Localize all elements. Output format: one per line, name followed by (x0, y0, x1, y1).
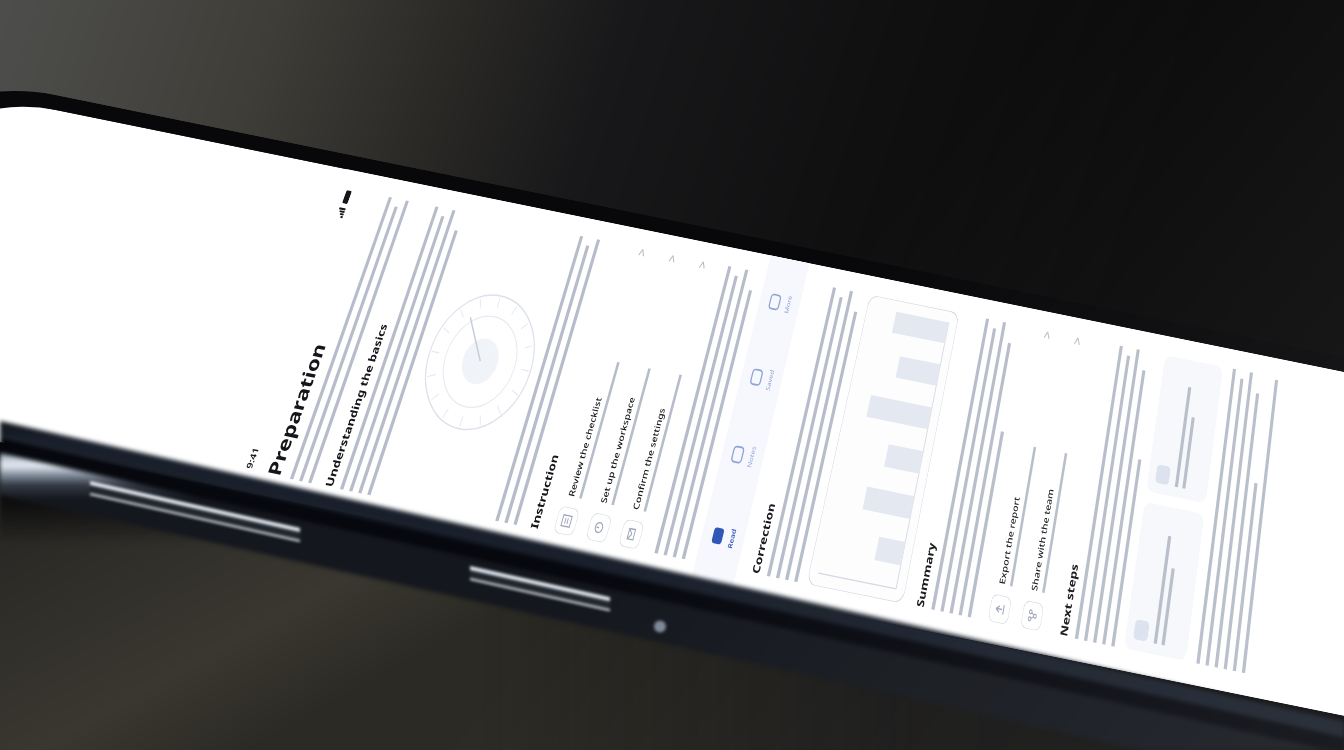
button[interactable]: Set up the workspace (573, 229, 693, 570)
staticText: Read (725, 528, 738, 549)
button[interactable]: Export the report (969, 309, 1077, 648)
staticText: Saved (763, 368, 776, 392)
staticText: More (782, 294, 794, 314)
button[interactable]: Confirm the settings (606, 236, 723, 576)
staticText: Notes (745, 445, 757, 468)
staticText: Set up the workspace (598, 394, 637, 506)
staticText: 9:41 (243, 446, 261, 470)
button[interactable] (806, 294, 962, 603)
staticText: Understanding the basics (322, 318, 390, 492)
button[interactable]: More (753, 269, 806, 337)
staticText: Review the checklist (566, 394, 604, 499)
staticText: Preparation (261, 337, 331, 481)
button[interactable]: Notes (715, 419, 770, 492)
staticText: Summary (912, 541, 939, 608)
staticText: Next steps (1053, 563, 1084, 637)
staticText: Instruction (527, 452, 561, 531)
button[interactable]: Read (694, 499, 751, 575)
button[interactable]: Saved (734, 343, 789, 413)
staticText: Share with the team (1025, 488, 1059, 592)
button[interactable]: Review the checklist (540, 222, 663, 563)
staticText: Correction (749, 501, 778, 575)
staticText: Confirm the settings (630, 406, 667, 512)
button[interactable]: Share with the team (999, 316, 1110, 654)
button[interactable] (1138, 355, 1233, 503)
staticText: Export the report (994, 495, 1024, 585)
button[interactable] (1115, 502, 1215, 661)
